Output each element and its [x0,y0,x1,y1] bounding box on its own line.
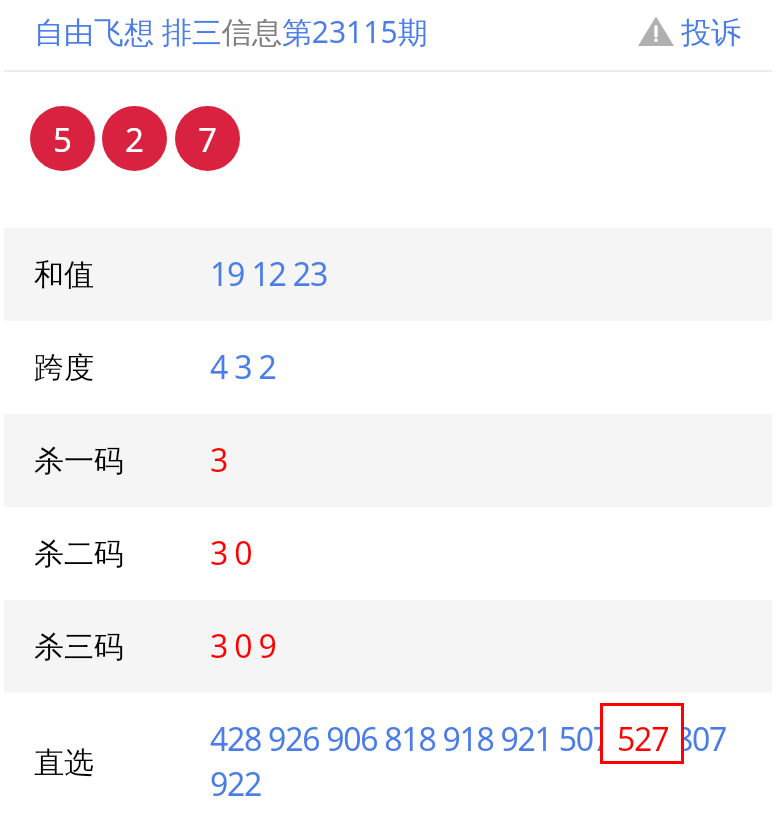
staticText: 7 [198,117,217,162]
staticText: 杀三码 [34,628,124,666]
staticText: 3 0 9 [210,624,276,668]
button[interactable]: 5 [30,106,95,171]
button[interactable]: Complaint [632,8,773,54]
staticText: 投诉 [681,14,741,52]
staticText: 直选 [34,744,94,782]
staticText: 杀一码 [34,442,124,480]
button[interactable]: 自由飞想 排三信息第23115期 [34,11,428,52]
button[interactable]: 杀一码 [4,414,772,507]
button[interactable]: 直选 [4,693,772,816]
staticText: 527 [617,717,669,761]
staticText: 4 3 2 [210,345,276,389]
staticText: 2 [125,117,144,162]
button[interactable]: 2 [102,106,167,171]
other: Complaint [638,16,674,46]
staticText: 跨度 [34,349,94,387]
staticText: 3 0 [210,531,252,575]
button[interactable]: 和值 [4,228,772,321]
button[interactable]: 跨度 [4,321,772,414]
staticText: 19 12 23 [210,252,328,296]
staticText: 3 [210,438,228,482]
button[interactable]: 7 [175,106,240,171]
button[interactable]: 杀二码 [4,507,772,600]
staticText: 428 926 906 818 918 921 507 527 807 922 [210,717,772,805]
staticText: 5 [53,117,72,162]
staticText: 和值 [34,256,94,294]
button[interactable]: 杀三码 [4,600,772,693]
staticText: 杀二码 [34,535,124,573]
button[interactable]: 527 [600,703,684,764]
